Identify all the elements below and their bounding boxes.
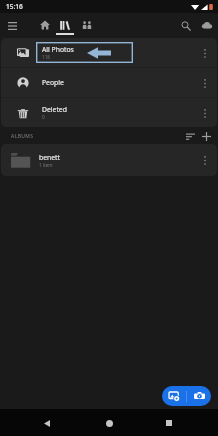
staticText: People xyxy=(42,78,64,87)
button[interactable]: More options for Deleted xyxy=(194,102,216,124)
button[interactable]: More options for All Photos xyxy=(194,42,216,64)
button[interactable]: Album options xyxy=(194,149,216,171)
button[interactable]: Cloud backup status xyxy=(196,15,217,36)
button[interactable]: Open navigation menu xyxy=(2,15,23,36)
button[interactable]: Deleted xyxy=(1,98,217,127)
button[interactable]: Search xyxy=(175,15,196,36)
staticText: All Photos xyxy=(42,45,74,54)
staticText: 1 item xyxy=(39,162,53,168)
button[interactable]: Home xyxy=(34,15,56,37)
button[interactable]: Sort albums xyxy=(182,128,198,144)
button[interactable]: Recent apps xyxy=(158,412,180,434)
button[interactable]: Home xyxy=(98,412,120,434)
staticText: Deleted xyxy=(42,105,67,114)
button[interactable]: Camera xyxy=(187,386,211,406)
button[interactable]: Add photos xyxy=(162,386,186,406)
staticText: 15:16 xyxy=(6,2,23,11)
button[interactable]: benett xyxy=(1,144,217,176)
staticText: benett xyxy=(39,153,60,162)
button[interactable]: Library xyxy=(54,15,76,37)
staticText: 0 xyxy=(42,114,45,120)
staticText: 118 xyxy=(42,54,50,60)
button[interactable]: All Photos xyxy=(1,38,217,67)
button[interactable]: Create new album xyxy=(198,128,214,144)
button[interactable]: More options for People xyxy=(194,72,216,94)
button[interactable]: Back xyxy=(36,412,58,434)
button[interactable]: People xyxy=(1,68,217,97)
staticText: ALBUMS xyxy=(11,133,34,140)
button[interactable]: Sharing xyxy=(76,15,98,37)
